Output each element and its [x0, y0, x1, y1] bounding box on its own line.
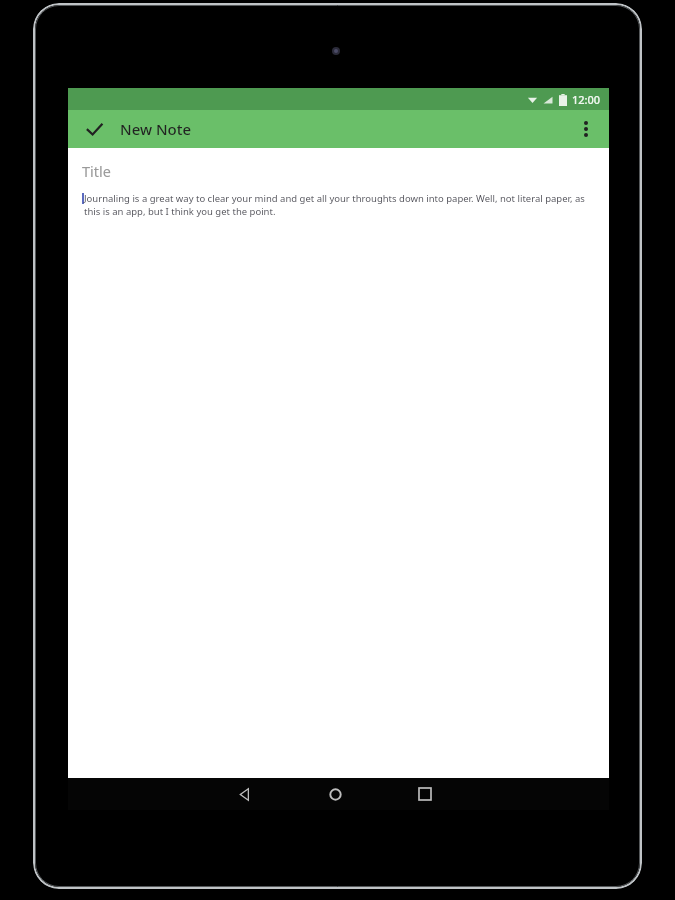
button[interactable]: Recent apps [408, 778, 442, 810]
staticText: New Note [120, 119, 192, 139]
button[interactable]: Back [228, 778, 262, 810]
staticText: 12:00 [572, 92, 601, 107]
button[interactable]: Title [68, 148, 609, 778]
button[interactable]: Save note [76, 111, 112, 147]
staticText: Title [82, 161, 111, 181]
staticText: Journaling is a great way to clear your … [84, 192, 595, 218]
button[interactable]: Home [318, 778, 352, 810]
button[interactable]: More options [569, 112, 603, 146]
